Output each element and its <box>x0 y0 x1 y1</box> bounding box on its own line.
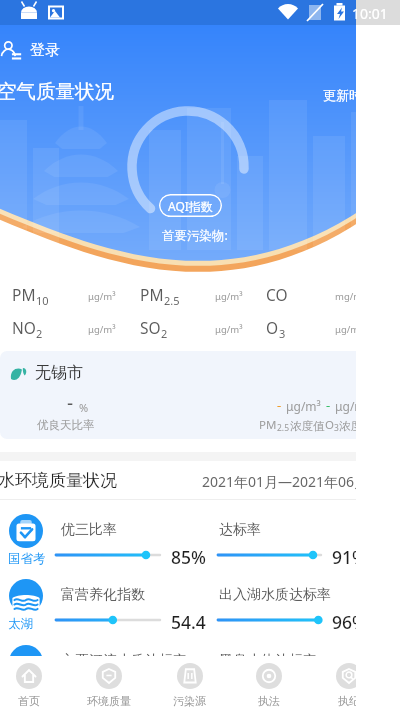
button[interactable]: 登录 <box>0 36 64 65</box>
staticText: 10:01 <box>352 4 388 23</box>
staticText: PM <box>140 284 164 305</box>
staticText: PM <box>12 284 36 305</box>
staticText: 黑臭水体达标率 <box>219 652 317 670</box>
staticText: 登录 <box>30 41 60 60</box>
staticText: 达标率 <box>219 521 261 539</box>
staticText: 96% <box>332 610 367 634</box>
staticText: 3 <box>279 326 286 341</box>
staticText: 2 <box>161 326 168 341</box>
staticText: 空气质量状况 <box>0 79 114 104</box>
staticText: 污染源 <box>173 694 206 708</box>
staticText: μg/m³ <box>88 323 116 336</box>
staticText: - <box>277 396 282 414</box>
staticText: 93% <box>332 676 367 700</box>
staticText: NO <box>12 317 36 338</box>
staticText: μg/m³ <box>88 290 116 303</box>
button[interactable]: 环境质量 <box>69 656 149 711</box>
button[interactable]: 国省考 <box>0 514 389 574</box>
button[interactable]: 太湖 <box>0 579 389 639</box>
staticText: 富营养化指数 <box>61 586 145 604</box>
staticText: AQI指数 <box>168 198 213 214</box>
staticText: 91% <box>332 545 367 569</box>
staticText: 出入湖水质达标率 <box>219 586 331 604</box>
staticText: 2.5 <box>164 293 180 308</box>
staticText: 执法 <box>258 694 280 708</box>
staticText: 首页 <box>18 694 40 708</box>
staticText: 85% <box>171 545 206 569</box>
button[interactable]: AQI指数 <box>159 194 222 217</box>
staticText: 浓度值 <box>339 419 374 433</box>
staticText: O <box>266 317 279 338</box>
staticText: SO <box>140 317 161 338</box>
staticText: 水环境质量状况 <box>0 470 117 491</box>
staticText: 54.4 <box>171 610 206 634</box>
staticText: 首要污染物: <box>162 227 228 244</box>
staticText: O <box>325 417 334 433</box>
staticText: mg/m³ <box>335 290 366 303</box>
staticText: CO <box>266 284 288 305</box>
staticText: 环境质量 <box>87 694 131 708</box>
button[interactable]: 河道 <box>0 645 389 705</box>
staticText: 执纪 <box>338 694 360 708</box>
staticText: μg/m³ <box>335 323 363 336</box>
staticText: PM <box>259 417 277 433</box>
button[interactable]: 无锡市 <box>0 351 378 439</box>
staticText: 2021年01月—2021年06月 <box>202 472 369 491</box>
staticText: 国省考 <box>8 551 46 567</box>
button[interactable]: 首页 <box>0 656 69 711</box>
staticText: μg/m³ <box>215 323 243 336</box>
staticText: μg/m³ <box>215 290 243 303</box>
staticText: 2 <box>36 326 43 341</box>
staticText: 太湖 <box>8 616 33 632</box>
staticText: 浓度值 <box>290 419 325 433</box>
staticText: μg/m³ <box>286 398 321 414</box>
button[interactable]: 污染源 <box>149 656 229 711</box>
staticText: 3 <box>334 422 339 434</box>
staticText: 主要河流水质达标率 <box>61 652 187 670</box>
staticText: 88% <box>171 676 206 700</box>
button[interactable]: 执法 <box>229 656 309 711</box>
staticText: 更新时间 -- <box>323 86 387 104</box>
staticText: 无锡市 <box>35 363 83 383</box>
staticText: 优三比率 <box>61 521 117 539</box>
staticText: 2.5 <box>277 422 290 434</box>
staticText: 优良天比率 <box>37 418 95 432</box>
staticText: - <box>67 390 74 416</box>
staticText: % <box>79 400 89 415</box>
staticText: μg/m³ <box>335 398 370 414</box>
staticText: - <box>326 396 331 414</box>
button[interactable]: 执纪 <box>309 656 389 711</box>
staticText: 10 <box>36 293 49 308</box>
staticText: 河道 <box>8 682 33 698</box>
